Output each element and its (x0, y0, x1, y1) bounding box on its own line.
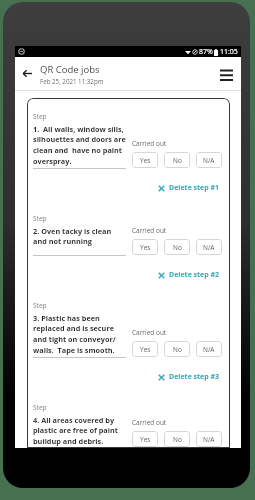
staticText: 4. All areas covered by plastic are free… (33, 415, 126, 447)
staticText: 2. Oven tacky is clean and not running (33, 226, 126, 247)
staticText: Yes (140, 243, 151, 252)
staticText: Step (33, 112, 47, 121)
button[interactable]: No (164, 152, 190, 168)
staticText: N/A (203, 156, 215, 165)
staticText: N/A (203, 345, 215, 354)
staticText: Carried out (132, 418, 167, 427)
staticText: Carried out (132, 226, 167, 235)
staticText: No (173, 435, 182, 444)
staticText: Carried out (132, 328, 167, 337)
button[interactable]: No (164, 341, 190, 357)
button[interactable]: Menu (211, 59, 241, 89)
button[interactable]: N/A (196, 431, 222, 447)
button[interactable]: Yes (132, 239, 158, 255)
staticText: 11:05 (220, 47, 238, 57)
button[interactable]: N/A (196, 341, 222, 357)
button[interactable]: Yes (132, 341, 158, 357)
staticText: Delete step #2 (169, 270, 220, 280)
staticText: Feb 25, 2021 11:32pm (40, 77, 104, 85)
button[interactable]: N/A (196, 239, 222, 255)
button[interactable]: Delete step #3 (158, 372, 220, 382)
staticText: 87% (199, 47, 213, 57)
staticText: 3. Plastic has been replaced and is secu… (33, 313, 126, 356)
staticText: N/A (203, 435, 215, 444)
staticText: No (173, 243, 182, 252)
button[interactable]: Delete step #1 (158, 183, 220, 193)
button[interactable]: Yes (132, 431, 158, 447)
staticText: No (173, 345, 182, 354)
button[interactable]: No (164, 431, 190, 447)
staticText: Carried out (132, 139, 167, 148)
staticText: Step (33, 403, 47, 412)
button[interactable]: N/A (196, 152, 222, 168)
staticText: N/A (203, 243, 215, 252)
staticText: 1. All walls, window sills, silhouettes … (33, 124, 126, 167)
button[interactable]: No (164, 239, 190, 255)
staticText: Step (33, 214, 47, 223)
staticText: Yes (140, 435, 151, 444)
staticText: Step (33, 301, 47, 310)
button[interactable]: Delete step #2 (158, 270, 220, 280)
staticText: Delete step #1 (169, 183, 220, 193)
button[interactable]: Back (15, 61, 40, 86)
staticText: Yes (140, 345, 151, 354)
button[interactable]: Yes (132, 152, 158, 168)
staticText: Delete step #3 (169, 372, 220, 382)
staticText: QR Code jobs (40, 63, 100, 76)
staticText: Yes (140, 156, 151, 165)
staticText: No (173, 156, 182, 165)
